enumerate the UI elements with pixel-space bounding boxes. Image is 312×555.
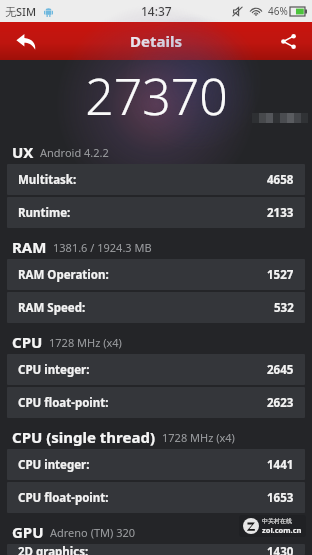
staticText: CPU (12, 332, 43, 352)
button[interactable]: RAM Operation: (7, 259, 305, 290)
staticText: Details (130, 31, 182, 51)
button[interactable]: 2D graphics: (7, 544, 305, 555)
staticText: CPU float-point: (18, 395, 109, 411)
button[interactable]: CPU integer: (7, 449, 305, 480)
staticText: 532 (274, 300, 294, 316)
staticText: 1381.6 / 1924.3 MB (53, 240, 152, 255)
staticText: CPU integer: (18, 457, 90, 473)
staticText: Multitask: (18, 172, 77, 188)
staticText: 1728 MHz (x4) (162, 430, 235, 445)
staticText: 14:37 (141, 3, 172, 19)
staticText: 1430 (267, 544, 294, 555)
staticText: 1527 (267, 267, 294, 283)
staticText: RAM Operation: (18, 267, 109, 283)
staticText: CPU (single thread) (12, 427, 156, 447)
staticText: 1653 (267, 490, 294, 506)
staticText: GPU (12, 522, 44, 542)
staticText: RAM (12, 237, 47, 257)
staticText: Runtime: (18, 205, 71, 221)
staticText: 4658 (267, 172, 294, 188)
button[interactable]: CPU float-point: (7, 387, 305, 418)
staticText: UX (12, 142, 34, 162)
button[interactable]: Share (264, 22, 312, 60)
staticText: 无SIM (5, 4, 37, 19)
staticText: 1441 (267, 457, 294, 473)
staticText: Android 4.2.2 (40, 145, 109, 160)
button[interactable]: CPU float-point: (7, 482, 305, 513)
staticText: 1728 MHz (x4) (49, 335, 122, 350)
button[interactable]: Runtime: (7, 197, 305, 228)
staticText: CPU integer: (18, 362, 90, 378)
button[interactable]: RAM Speed: (7, 292, 305, 323)
staticText: CPU float-point: (18, 490, 109, 506)
staticText: 中关村在线 (262, 517, 292, 525)
staticText: 2623 (267, 395, 294, 411)
staticText: Adreno (TM) 320 (50, 525, 136, 540)
staticText: 2645 (267, 362, 294, 378)
button[interactable]: CPU integer: (7, 354, 305, 385)
button[interactable]: Multitask: (7, 164, 305, 195)
button[interactable]: Back (0, 22, 52, 60)
staticText: 46% (268, 4, 288, 18)
staticText: RAM Speed: (18, 300, 86, 316)
staticText: 27370 (85, 62, 228, 130)
staticText: 2133 (267, 205, 294, 221)
staticText: 2D graphics: (18, 544, 89, 555)
staticText: zol.com.cn (262, 525, 302, 535)
